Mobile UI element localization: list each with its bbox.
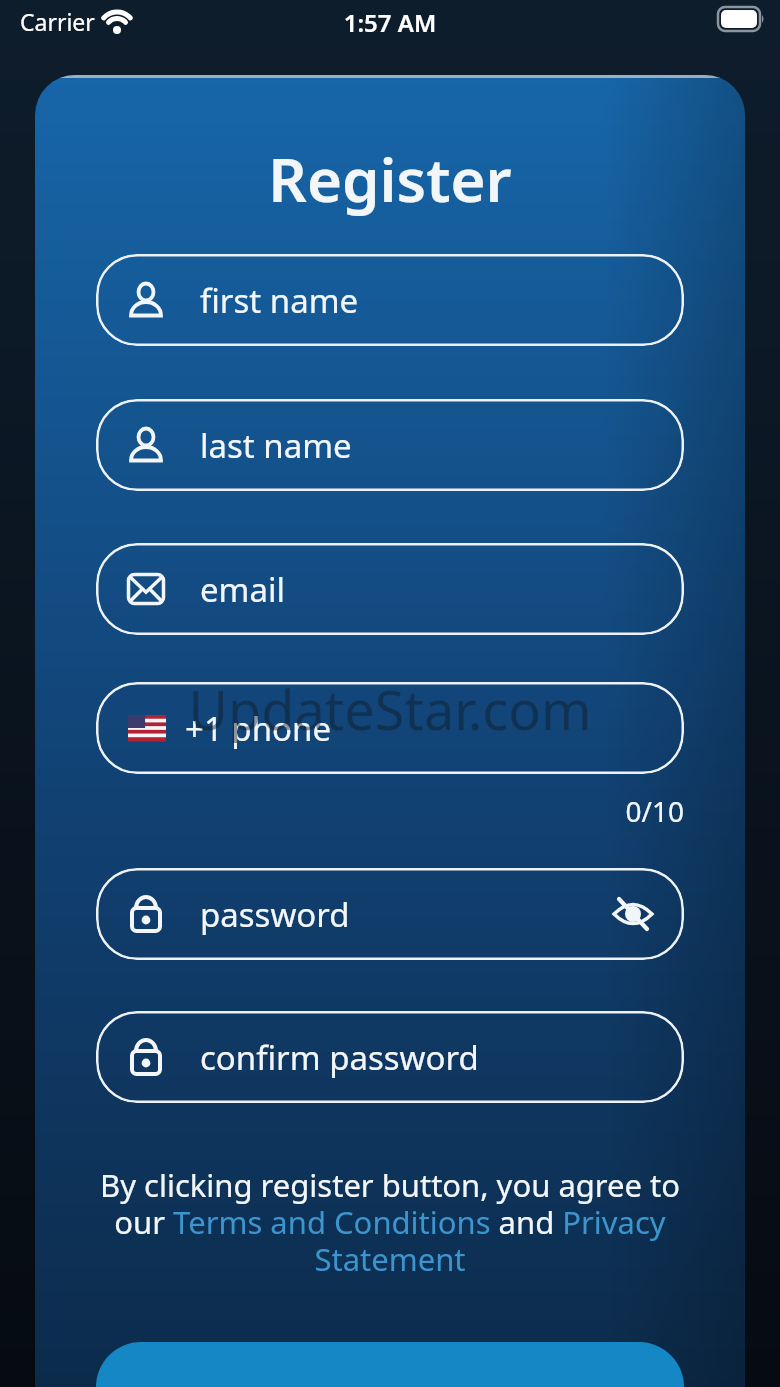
staticText: +1 phone xyxy=(185,706,331,751)
button[interactable]: Register xyxy=(96,1342,684,1387)
staticText: 0/10 xyxy=(0,792,684,830)
button[interactable]: By clicking register button, you agree t… xyxy=(0,1164,780,1280)
button[interactable]: last name xyxy=(96,399,684,491)
staticText: Register xyxy=(0,138,780,220)
button[interactable]: email xyxy=(96,543,684,635)
staticText: 1:57 AM xyxy=(0,6,780,39)
button[interactable]: password xyxy=(96,868,684,960)
staticText: UpdateStar.com xyxy=(0,672,780,746)
staticText: confirm password xyxy=(200,1035,479,1080)
staticText: password xyxy=(200,892,350,937)
button[interactable]: first name xyxy=(96,254,684,346)
staticText: last name xyxy=(200,423,352,468)
button[interactable]: confirm password xyxy=(96,1011,684,1103)
button[interactable]: +1 phone xyxy=(96,682,684,774)
staticText: email xyxy=(200,567,286,612)
staticText: Carrier xyxy=(20,6,95,37)
staticText: first name xyxy=(200,278,359,323)
